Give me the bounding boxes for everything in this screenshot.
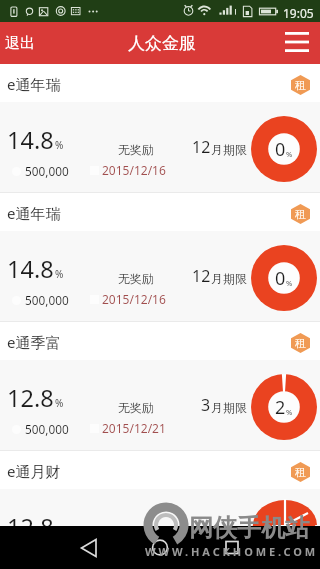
staticText: 12: [192, 136, 211, 158]
staticText: %: [286, 407, 293, 417]
staticText: 2015/12/21: [102, 549, 166, 565]
staticText: 租: [295, 336, 306, 350]
staticText: 12.8: [7, 382, 54, 414]
staticText: 退出: [5, 34, 35, 53]
staticText: e通年瑞: [7, 74, 61, 94]
staticText: 2015/12/21: [102, 420, 166, 436]
button[interactable]: 退出: [0, 26, 49, 61]
staticText: %: [55, 396, 64, 410]
staticText: %: [286, 149, 293, 159]
staticText: 500,000: [25, 421, 69, 437]
staticText: 租: [295, 207, 306, 221]
staticText: 月期限: [211, 529, 247, 544]
staticText: 无奖励: [118, 400, 154, 415]
staticText: 500,000: [25, 163, 69, 179]
staticText: 19:05: [283, 5, 314, 21]
button[interactable]: e通月财: [0, 451, 320, 569]
staticText: %: [55, 138, 64, 152]
staticText: 2015/12/16: [102, 162, 166, 178]
staticText: 无奖励: [118, 271, 154, 286]
staticText: 0: [275, 137, 286, 162]
staticText: 500,000: [25, 292, 69, 308]
staticText: 12.8: [7, 511, 54, 543]
staticText: 网侠手机站: [189, 513, 309, 543]
staticText: 2015/12/16: [102, 291, 166, 307]
staticText: e通季富: [7, 332, 61, 352]
staticText: e通年瑞: [7, 203, 61, 223]
staticText: 12: [192, 265, 211, 287]
staticText: 人众金服: [128, 33, 196, 54]
staticText: WWW.HACKHOME.COM: [145, 544, 319, 559]
staticText: 月期限: [211, 142, 247, 157]
button[interactable]: Recents: [210, 526, 254, 569]
staticText: 1: [201, 523, 211, 545]
staticText: 租: [295, 465, 306, 479]
staticText: %: [55, 525, 64, 539]
staticText: 月期限: [211, 400, 247, 415]
staticText: e通月财: [7, 461, 61, 481]
staticText: 0: [275, 266, 286, 291]
button[interactable]: Home: [138, 526, 182, 569]
staticText: 0: [275, 524, 286, 549]
staticText: 月期限: [211, 271, 247, 286]
staticText: 14.8: [7, 124, 54, 156]
staticText: 租: [295, 78, 306, 92]
staticText: %: [55, 267, 64, 281]
staticText: 2: [275, 395, 286, 420]
staticText: 14.8: [7, 253, 54, 285]
staticText: 3: [201, 394, 211, 416]
button[interactable]: e通季富: [0, 322, 320, 450]
staticText: 无奖励: [118, 142, 154, 157]
staticText: %: [286, 278, 293, 288]
staticText: 无奖励: [118, 529, 154, 544]
button[interactable]: Menu: [273, 25, 320, 61]
button[interactable]: Back: [67, 526, 111, 569]
button[interactable]: e通年瑞: [0, 193, 320, 321]
button[interactable]: e通年瑞: [0, 64, 320, 192]
